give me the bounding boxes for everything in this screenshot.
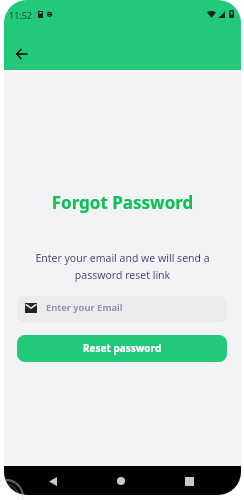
staticText: Enter your email and we will send a pass…	[4, 251, 241, 282]
button[interactable]: Back	[40, 468, 66, 494]
button[interactable]: Enter your Email	[17, 296, 227, 322]
button[interactable]: Reset password	[17, 335, 227, 362]
staticText: 11:52	[9, 9, 33, 21]
staticText: Reset password	[83, 341, 162, 355]
button[interactable]: Recent apps	[176, 468, 202, 494]
staticText: Forgot Password	[4, 191, 241, 214]
staticText: Enter your Email	[46, 301, 123, 314]
button[interactable]: Home	[108, 468, 134, 494]
button[interactable]: Back	[7, 40, 35, 68]
